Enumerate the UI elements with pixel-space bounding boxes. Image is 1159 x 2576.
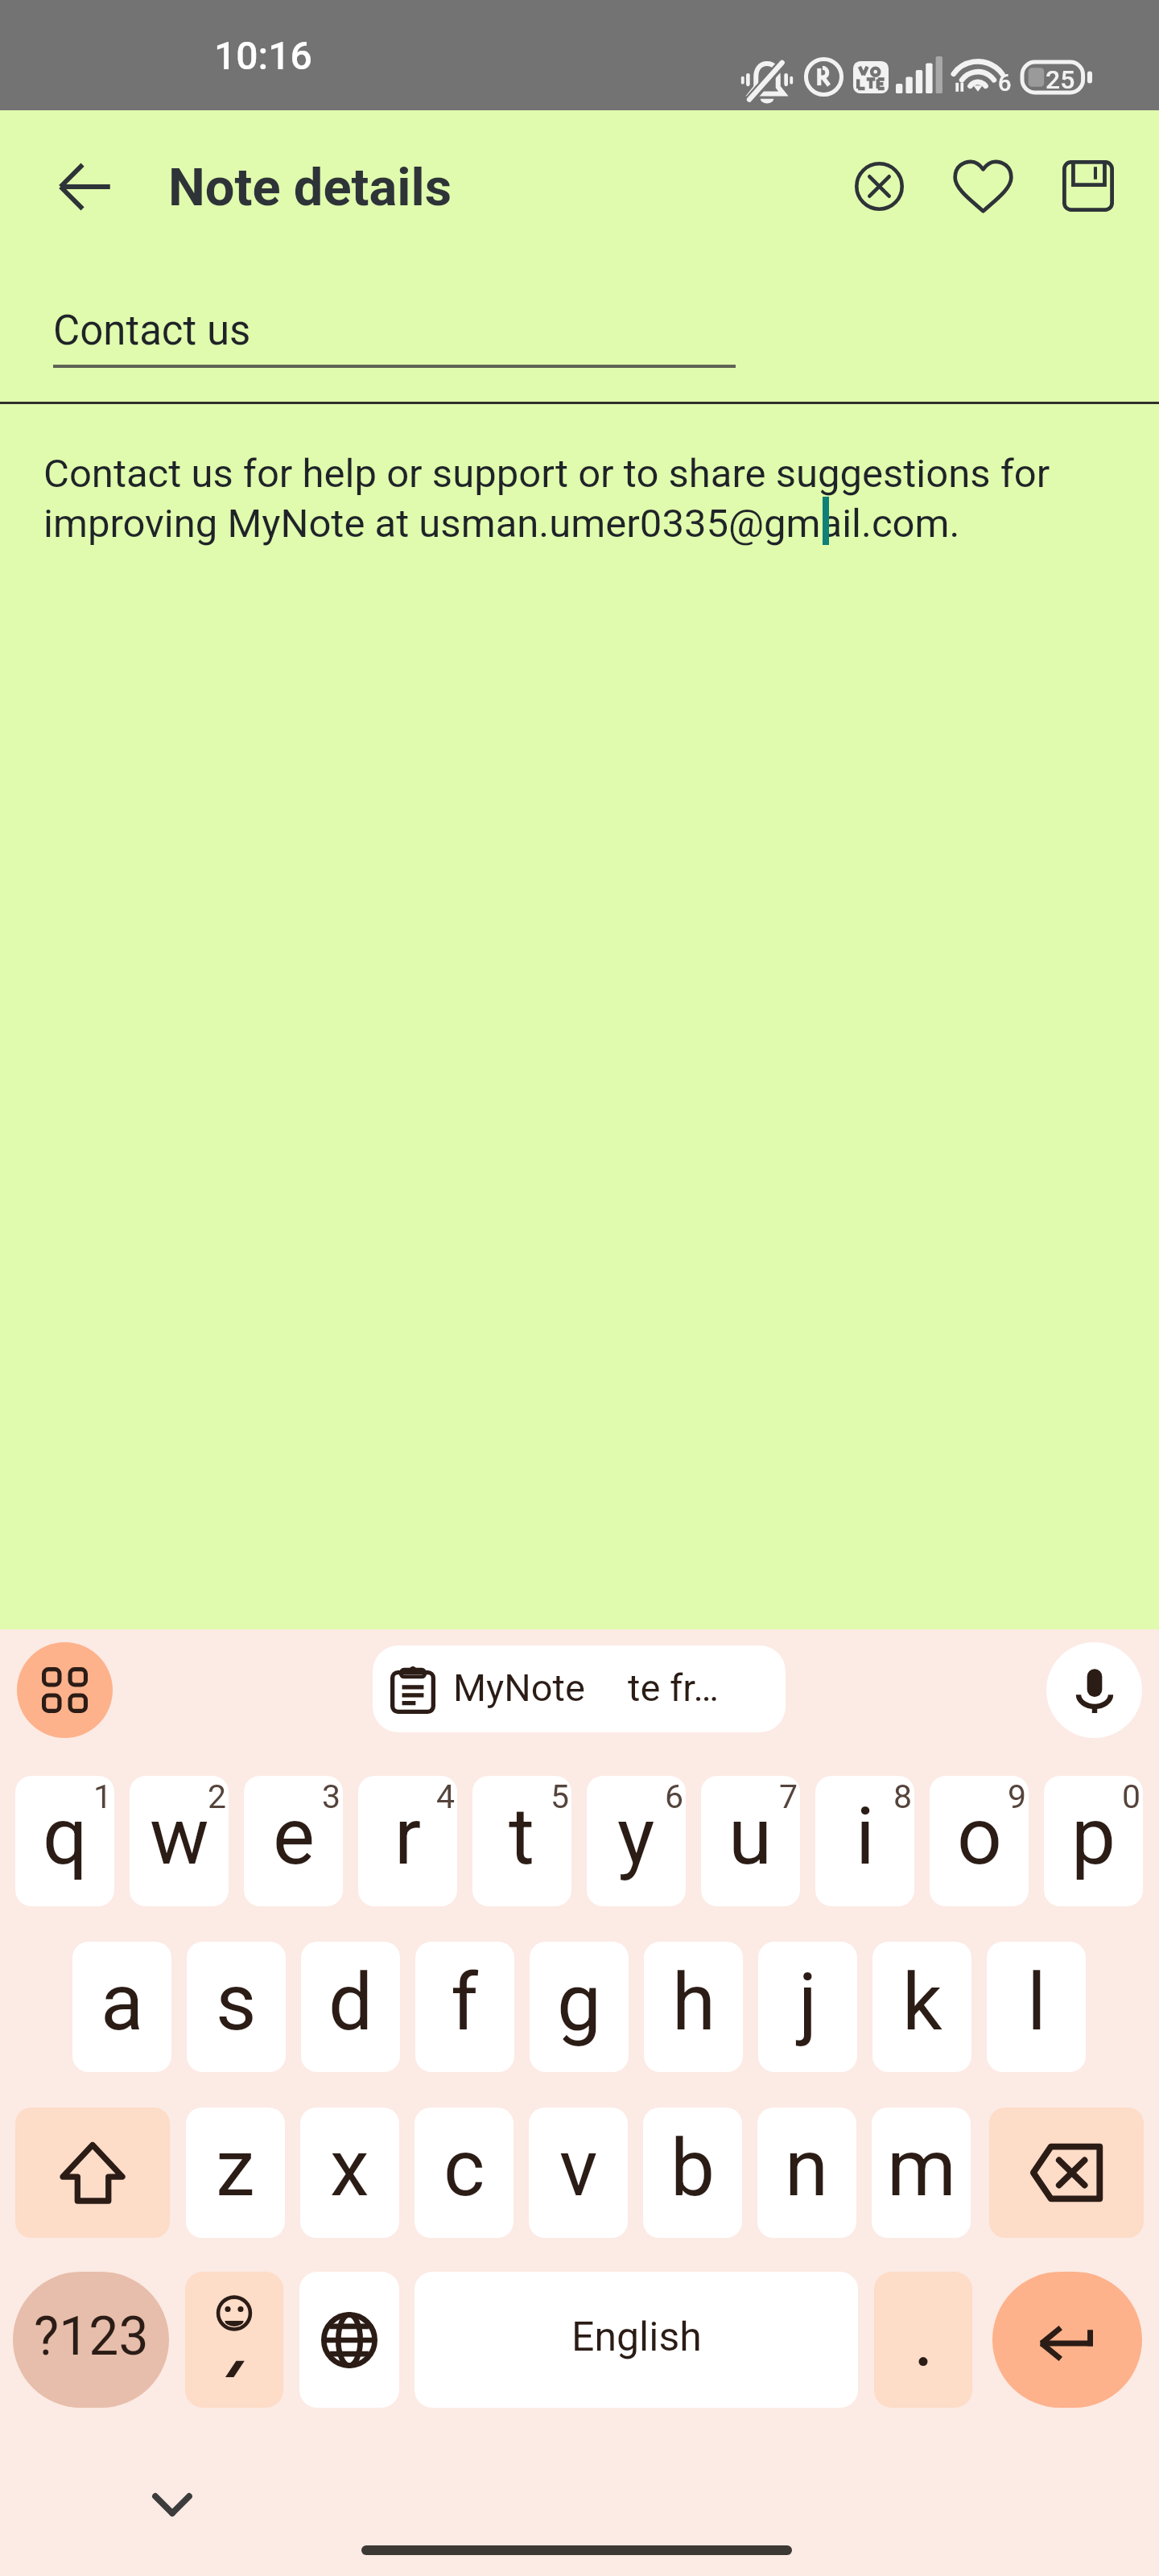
staticText: z xyxy=(216,2122,255,2215)
button[interactable]: m xyxy=(872,2107,971,2238)
staticText: s xyxy=(216,1956,257,2049)
button[interactable]: e xyxy=(244,1776,343,1906)
staticText: q xyxy=(43,1790,88,1883)
button[interactable]: u xyxy=(701,1776,800,1906)
staticText: 5 xyxy=(551,1777,570,1816)
staticText: f xyxy=(451,1956,479,2049)
staticText: 10:16 xyxy=(214,33,312,78)
staticText: m xyxy=(887,2122,956,2215)
button[interactable]: Change language xyxy=(299,2272,399,2408)
staticText: 3 xyxy=(322,1777,341,1816)
button[interactable]: Contact us xyxy=(0,249,1159,402)
staticText: l xyxy=(1027,1956,1046,2049)
staticText: 7 xyxy=(779,1777,798,1816)
button[interactable]: n xyxy=(757,2107,856,2238)
button[interactable]: Clear xyxy=(835,142,923,230)
button[interactable]: l xyxy=(987,1942,1086,2072)
button[interactable]: o xyxy=(930,1776,1029,1906)
staticText: 1 xyxy=(93,1777,113,1816)
button[interactable]: g xyxy=(530,1942,629,2072)
staticText: v xyxy=(559,2122,598,2215)
staticText: u xyxy=(728,1790,773,1883)
button[interactable]: x xyxy=(300,2107,399,2238)
staticText: d xyxy=(328,1956,373,2049)
button[interactable]: Back xyxy=(43,144,127,229)
staticText: te fr… xyxy=(628,1666,719,1710)
button[interactable]: Favourite xyxy=(938,142,1027,230)
button[interactable]: Toolbar xyxy=(17,1642,113,1738)
staticText: p xyxy=(1071,1790,1116,1883)
staticText: 0 xyxy=(1122,1777,1141,1816)
staticText: 9 xyxy=(1008,1777,1027,1816)
button[interactable]: c xyxy=(415,2107,514,2238)
staticText: k xyxy=(902,1956,942,2049)
staticText: g xyxy=(557,1956,602,2049)
staticText: n xyxy=(785,2122,829,2215)
button[interactable]: Voice input xyxy=(1046,1642,1142,1738)
button[interactable]: Backspace xyxy=(989,2107,1144,2238)
button[interactable]: a xyxy=(72,1942,171,2072)
button[interactable]: Enter xyxy=(992,2272,1142,2408)
button[interactable]: English xyxy=(415,2272,858,2408)
staticText: h xyxy=(672,1956,716,2049)
button[interactable]: z xyxy=(186,2107,285,2238)
button[interactable]: t xyxy=(472,1776,571,1906)
button[interactable]: d xyxy=(301,1942,400,2072)
staticText: b xyxy=(670,2122,716,2215)
staticText: y xyxy=(617,1790,655,1883)
staticText: j xyxy=(798,1956,818,2049)
staticText: English xyxy=(571,2314,702,2361)
staticText: x xyxy=(330,2122,369,2215)
staticText: 6 xyxy=(998,69,1012,97)
button[interactable]: Shift xyxy=(15,2107,170,2238)
staticText: r xyxy=(394,1790,422,1883)
staticText: i xyxy=(856,1790,875,1883)
staticText: e xyxy=(273,1790,315,1883)
staticText: Note details xyxy=(168,157,452,218)
staticText: a xyxy=(101,1956,144,2049)
staticText: 25 xyxy=(1046,64,1075,95)
staticText: Contact us xyxy=(53,307,251,355)
button[interactable]: j xyxy=(758,1942,857,2072)
staticText: t xyxy=(509,1790,535,1883)
staticText: ?123 xyxy=(34,2306,149,2368)
staticText: Contact us for help or support or to sha… xyxy=(43,451,1079,547)
button[interactable]: p xyxy=(1044,1776,1143,1906)
staticText: 6 xyxy=(665,1777,684,1816)
button[interactable]: f xyxy=(415,1942,514,2072)
button[interactable]: Save xyxy=(1044,142,1132,230)
button[interactable]: w xyxy=(130,1776,229,1906)
button[interactable]: h xyxy=(644,1942,743,2072)
staticText: c xyxy=(443,2122,485,2215)
button[interactable]: Hide keyboard xyxy=(129,2460,216,2547)
button[interactable]: i xyxy=(815,1776,914,1906)
button[interactable]: ?123 xyxy=(13,2272,169,2408)
staticText: MyNote xyxy=(453,1666,585,1710)
button[interactable]: y xyxy=(587,1776,686,1906)
button[interactable]: Emoji xyxy=(185,2272,283,2408)
staticText: w xyxy=(150,1790,209,1883)
button[interactable]: k xyxy=(872,1942,971,2072)
button[interactable]: Contact us for help or support or to sha… xyxy=(0,412,1159,1620)
button[interactable]: r xyxy=(358,1776,457,1906)
staticText: 4 xyxy=(436,1777,456,1816)
button[interactable]: s xyxy=(187,1942,286,2072)
button[interactable] xyxy=(874,2272,972,2408)
staticText: 8 xyxy=(893,1777,913,1816)
staticText: 2 xyxy=(208,1777,227,1816)
button[interactable]: v xyxy=(529,2107,628,2238)
button[interactable]: q xyxy=(15,1776,114,1906)
button[interactable]: b xyxy=(643,2107,742,2238)
staticText: o xyxy=(957,1790,1002,1883)
button[interactable]: MyNote xyxy=(373,1645,786,1732)
